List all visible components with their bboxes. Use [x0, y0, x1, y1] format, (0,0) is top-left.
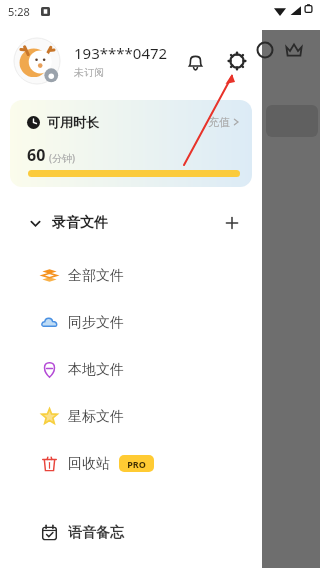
button[interactable]: Settings: [220, 44, 254, 78]
button[interactable]: 回收站: [0, 440, 262, 487]
staticText: 星标文件: [68, 408, 124, 426]
button[interactable]: 全部文件: [0, 252, 262, 299]
button[interactable]: 本地文件: [0, 346, 262, 393]
staticText: 全部文件: [68, 267, 124, 285]
staticText: (分钟): [49, 151, 75, 165]
staticText: 5:28: [8, 4, 30, 19]
button[interactable]: 录音文件: [0, 206, 262, 240]
staticText: 同步文件: [68, 314, 124, 332]
button[interactable]: Add folder: [216, 207, 248, 239]
staticText: 语音备忘: [68, 524, 124, 542]
staticText: 充值: [208, 115, 230, 129]
staticText: 录音文件: [52, 214, 108, 232]
button[interactable]: 星标文件: [0, 393, 262, 440]
staticText: 未订阅: [74, 66, 104, 79]
button[interactable]: [14, 38, 60, 84]
staticText: 本地文件: [68, 361, 124, 379]
staticText: 193****0472: [74, 43, 168, 63]
staticText: 60: [27, 144, 46, 166]
staticText: 可用时长: [47, 114, 99, 130]
button[interactable]: 同步文件: [0, 299, 262, 346]
staticText: PRO: [127, 458, 146, 470]
staticText: 回收站: [68, 455, 110, 473]
button[interactable]: 可用时长: [10, 100, 252, 187]
button[interactable]: 语音备忘: [0, 509, 262, 556]
button[interactable]: Notifications: [178, 44, 212, 78]
